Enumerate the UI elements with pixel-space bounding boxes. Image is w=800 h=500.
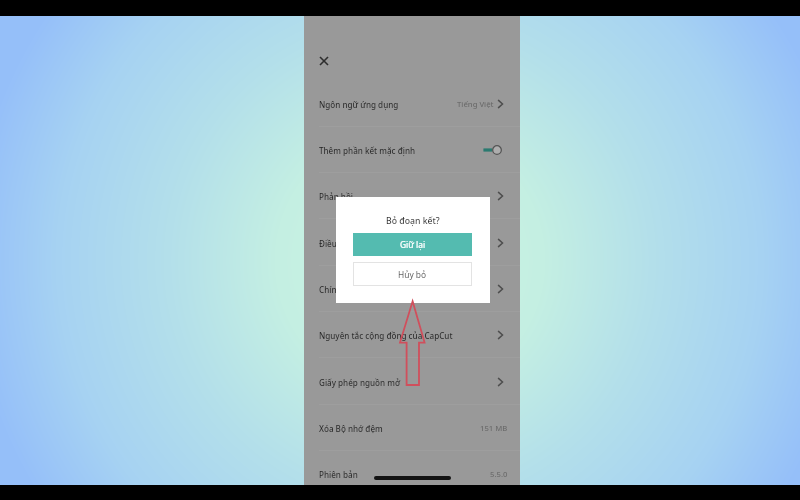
button[interactable]: Ngôn ngữ ứng dụng — [304, 81, 520, 127]
button[interactable]: Chính sách quyền riêng tư — [304, 266, 520, 312]
staticText: Giữ lại — [400, 239, 426, 250]
staticText: 5.5.0 — [490, 469, 508, 479]
staticText: Phiên bản — [319, 469, 358, 480]
button[interactable]: Nguyên tắc cộng đồng của CapCut — [304, 312, 520, 358]
staticText: Phản hồi — [319, 191, 354, 202]
staticText: Nguyên tắc cộng đồng của CapCut — [319, 330, 453, 341]
button[interactable]: Phiên bản — [304, 451, 520, 497]
staticText: Thêm phần kết mặc định — [319, 145, 416, 156]
button[interactable]: Giữ lại — [353, 233, 472, 256]
staticText: Giấy phép nguồn mở — [319, 377, 401, 388]
button[interactable]: Hủy bỏ — [353, 262, 472, 286]
staticText: Chính sách quyền riêng tư — [319, 284, 421, 295]
staticText: Bỏ đoạn kết? — [386, 215, 440, 227]
staticText: Điều khoản dịch vụ — [319, 238, 393, 249]
button[interactable]: Phản hồi — [304, 173, 520, 219]
staticText: Xóa Bộ nhớ đệm — [319, 423, 383, 434]
staticText: Ngôn ngữ ứng dụng — [319, 99, 399, 110]
button[interactable]: Điều khoản dịch vụ — [304, 220, 520, 266]
button[interactable]: Thêm phần kết mặc định — [304, 127, 520, 173]
button[interactable]: Giấy phép nguồn mở — [304, 359, 520, 405]
staticText: Tiếng Việt — [457, 99, 494, 109]
staticText: 151 MB — [480, 423, 508, 433]
staticText: Hủy bỏ — [398, 269, 427, 280]
button[interactable]: Close — [314, 51, 334, 71]
button[interactable]: Xóa Bộ nhớ đệm — [304, 405, 520, 451]
